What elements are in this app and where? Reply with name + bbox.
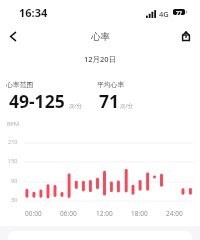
staticText: 150 (8, 157, 18, 164)
staticText: 16:34 (19, 5, 48, 20)
staticText: 77 (176, 9, 182, 15)
staticText: 00:00 (25, 209, 42, 218)
staticText: 心率范围 (6, 80, 34, 89)
staticText: 12:00 (96, 209, 113, 218)
staticText: 次/分 (69, 102, 83, 110)
staticText: 90 (11, 177, 18, 184)
staticText: 30 (11, 196, 18, 203)
staticText: 平均心率 (97, 80, 125, 89)
button[interactable]: Share (172, 25, 200, 47)
staticText: 12月20日 (84, 54, 117, 64)
button[interactable]: 12月20日 (0, 53, 200, 65)
staticText: 心率 (91, 31, 110, 43)
staticText: 4G (159, 9, 169, 19)
staticText: 71 (99, 89, 120, 113)
staticText: 次/分 (120, 102, 134, 110)
button[interactable]: Back (0, 25, 26, 47)
staticText: 18:00 (131, 209, 148, 218)
staticText: BPM (7, 120, 19, 127)
staticText: 06:00 (60, 209, 77, 218)
staticText: 24:00 (166, 209, 183, 218)
staticText: 49-125 (9, 89, 65, 113)
staticText: 210 (8, 138, 18, 145)
